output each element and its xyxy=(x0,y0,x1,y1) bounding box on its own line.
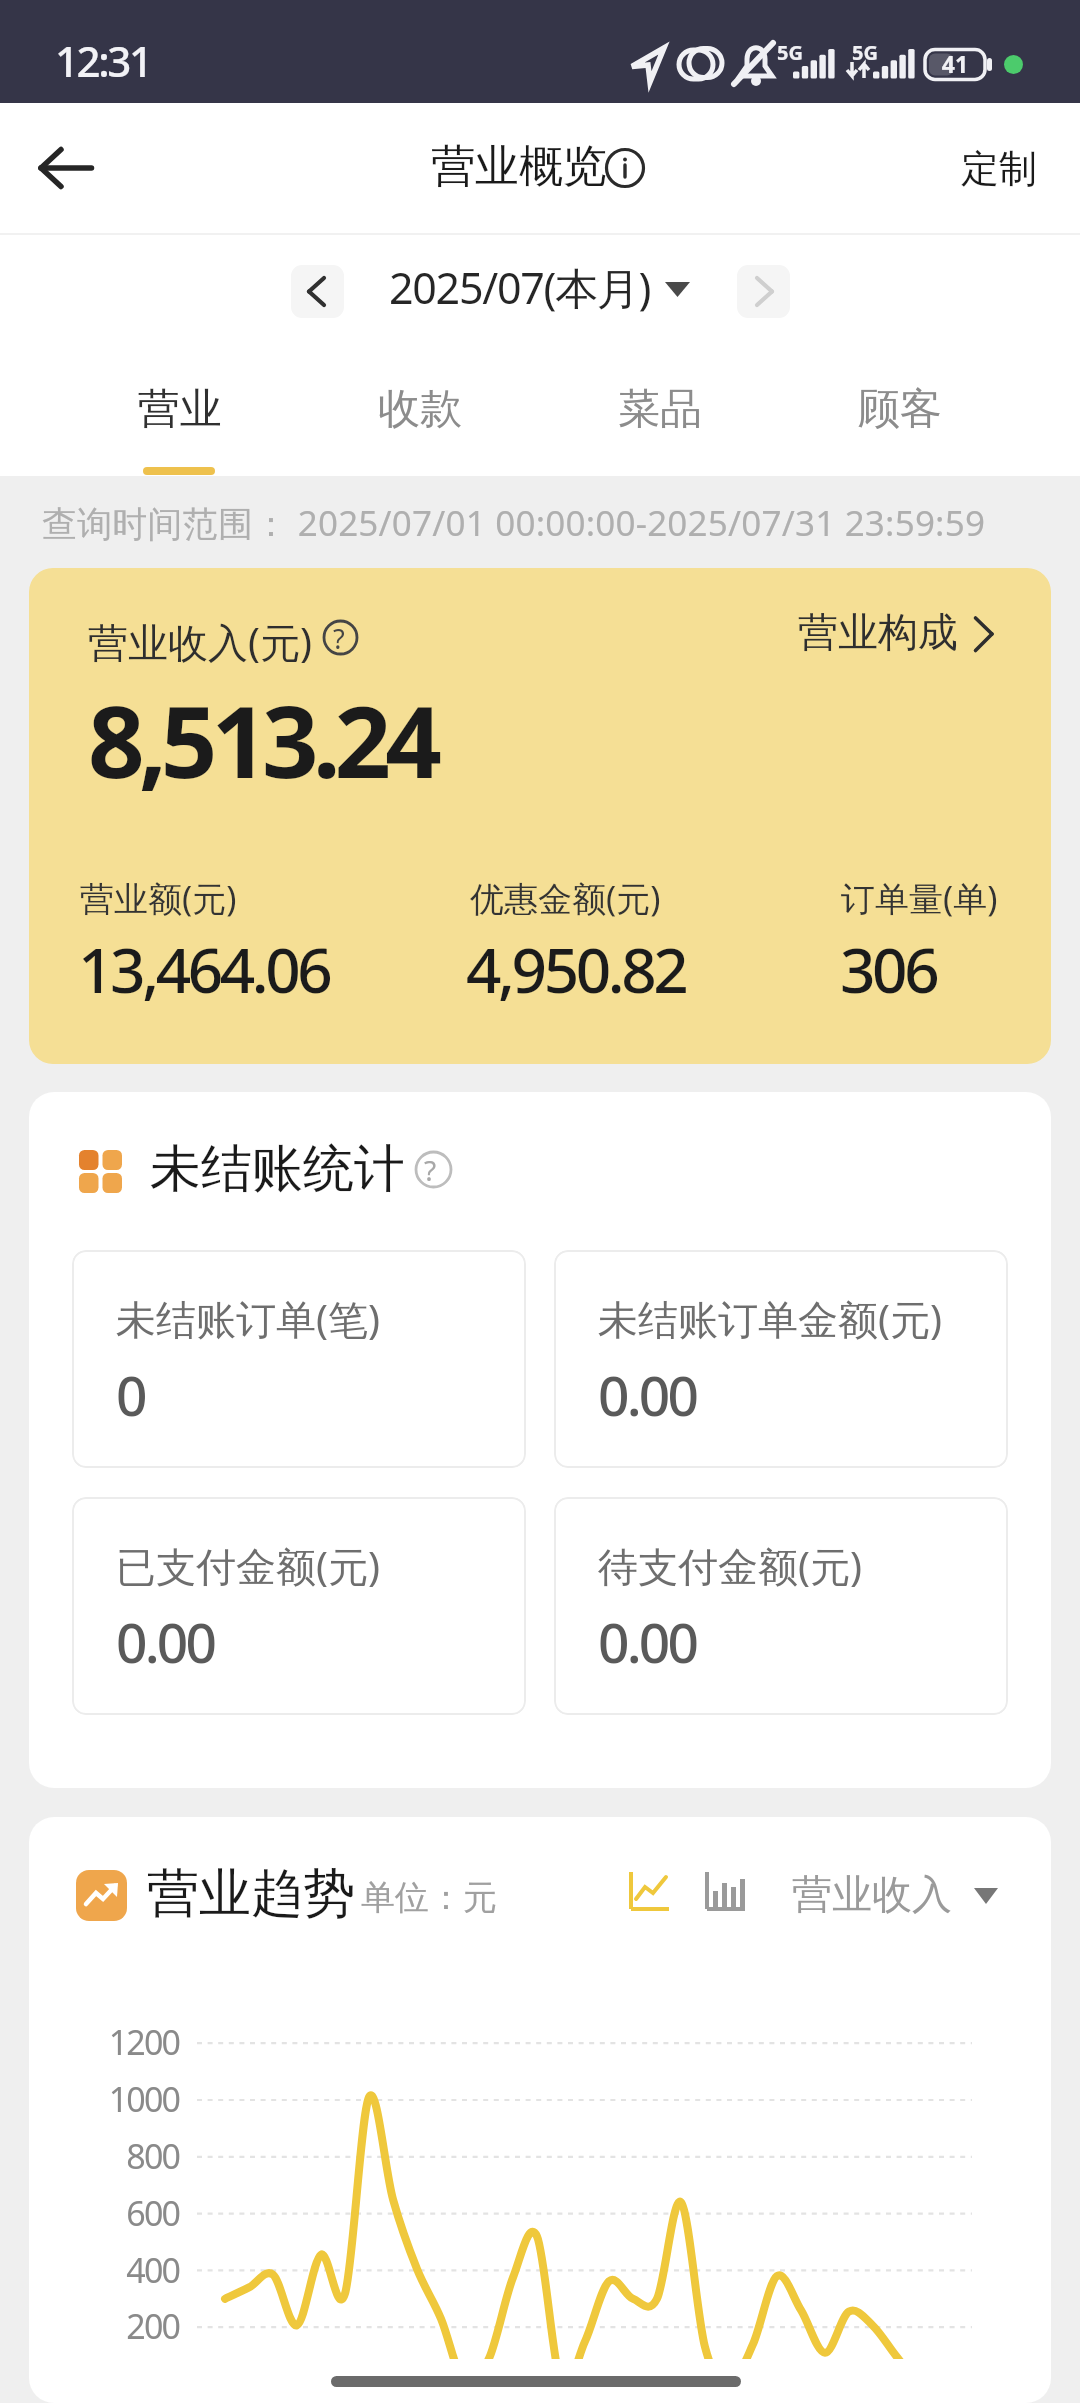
staticText: 1200 xyxy=(19,2019,179,2065)
staticText: 12:31 xyxy=(55,32,151,89)
button[interactable]: 2025/07(本月) xyxy=(372,256,702,326)
staticText: 未结账订单金额(元) xyxy=(598,1291,942,1346)
button[interactable]: Line chart xyxy=(621,1861,683,1923)
staticText: 306 xyxy=(840,927,937,1011)
staticText: 200 xyxy=(19,2303,179,2349)
button[interactable]: Bar chart xyxy=(697,1861,759,1923)
staticText: 13,464.06 xyxy=(78,927,330,1011)
staticText: 单位：元 xyxy=(361,1876,497,1919)
button[interactable]: 菜品 xyxy=(550,345,770,476)
staticText: 800 xyxy=(19,2133,179,2179)
staticText: 定制 xyxy=(961,145,1037,193)
button[interactable]: 营业构成 xyxy=(785,603,1025,669)
button[interactable]: Previous period xyxy=(291,265,344,318)
staticText: 未结账统计 xyxy=(150,1137,405,1201)
staticText: 400 xyxy=(19,2247,179,2293)
button[interactable]: 未结账订单金额(元) xyxy=(554,1250,1008,1468)
staticText: 8,513.24 xyxy=(88,672,436,807)
staticText: 顾客 xyxy=(790,383,1010,436)
staticText: 2025/07(本月) xyxy=(389,258,651,317)
button[interactable]: 顾客 xyxy=(790,345,1010,476)
staticText: 0.00 xyxy=(116,1604,215,1679)
staticText: 查询时间范围： 2025/07/01 00:00:00-2025/07/31 2… xyxy=(42,499,986,547)
staticText: 订单量(单) xyxy=(841,875,998,921)
staticText: 菜品 xyxy=(550,383,770,436)
staticText: 营业收入(元) xyxy=(88,614,312,669)
staticText: 营业额(元) xyxy=(80,875,237,921)
staticText: 4,950.82 xyxy=(466,927,686,1011)
staticText: ? xyxy=(333,620,345,657)
staticText: ? xyxy=(424,1151,437,1189)
staticText: 营业概览 xyxy=(431,139,607,194)
staticText: 0.00 xyxy=(598,1604,697,1679)
staticText: 41 xyxy=(925,48,985,79)
button[interactable]: 待支付金额(元) xyxy=(554,1497,1008,1715)
button[interactable]: 已支付金额(元) xyxy=(72,1497,526,1715)
staticText: 营业收入 xyxy=(792,1869,952,1919)
button[interactable]: 未结账订单(笔) xyxy=(72,1250,526,1468)
button[interactable]: 定制 xyxy=(940,123,1060,213)
staticText: 已支付金额(元) xyxy=(116,1538,380,1593)
button[interactable]: 营业收入(元) xyxy=(79,604,399,670)
staticText: 600 xyxy=(19,2190,179,2236)
staticText: 收款 xyxy=(310,383,530,436)
button[interactable]: 营业 xyxy=(70,345,290,476)
staticText: 5G xyxy=(852,39,878,66)
staticText: 1000 xyxy=(19,2076,179,2122)
button[interactable]: Next period xyxy=(737,265,790,318)
staticText: 未结账订单(笔) xyxy=(116,1291,380,1346)
staticText: 营业趋势 xyxy=(147,1861,355,1927)
staticText: 待支付金额(元) xyxy=(598,1538,862,1593)
staticText: 营业构成 xyxy=(798,607,958,657)
staticText: 5G xyxy=(777,39,803,66)
staticText: 优惠金额(元) xyxy=(470,875,661,921)
staticText: 0.00 xyxy=(598,1357,697,1432)
button[interactable]: 收款 xyxy=(310,345,530,476)
button[interactable]: 营业收入 xyxy=(781,1863,1031,1925)
staticText: 0 xyxy=(116,1357,145,1432)
button[interactable]: Help xyxy=(414,1150,453,1189)
button[interactable]: Back xyxy=(16,118,116,218)
staticText: 营业 xyxy=(70,383,290,436)
